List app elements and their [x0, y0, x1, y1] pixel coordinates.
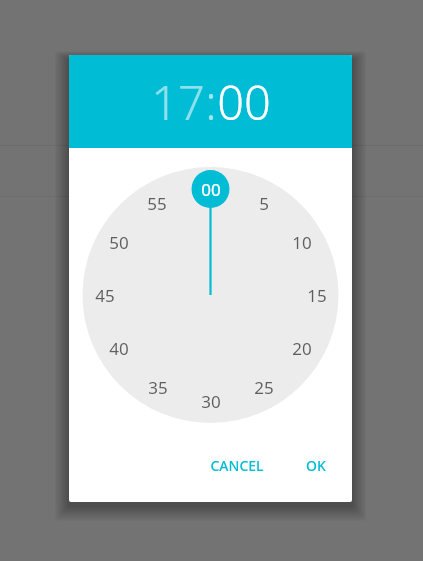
- staticText: 55: [147, 192, 167, 215]
- button[interactable]: OK: [296, 449, 336, 482]
- staticText: 35: [148, 376, 168, 399]
- staticText: 30: [201, 390, 221, 413]
- staticText: 40: [109, 337, 129, 360]
- staticText: 17: [151, 70, 205, 134]
- staticText: 10: [292, 231, 312, 254]
- button[interactable]: Minute dial, 00 selected: [69, 148, 352, 449]
- button[interactable]: 00: [217, 70, 271, 134]
- staticText: 15: [307, 284, 327, 307]
- staticText: 45: [95, 284, 115, 307]
- staticText: 00: [217, 70, 271, 134]
- staticText: 5: [259, 192, 269, 215]
- staticText: 00: [201, 178, 221, 201]
- staticText: 25: [254, 376, 274, 399]
- button[interactable]: 17: [151, 70, 205, 134]
- staticText: 20: [292, 337, 312, 360]
- staticText: OK: [306, 456, 326, 475]
- staticText: 50: [109, 231, 129, 254]
- staticText: CANCEL: [210, 456, 264, 475]
- staticText: :: [205, 70, 217, 134]
- button[interactable]: CANCEL: [200, 449, 274, 482]
